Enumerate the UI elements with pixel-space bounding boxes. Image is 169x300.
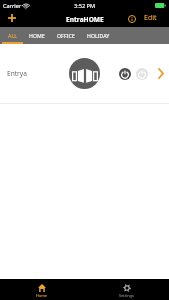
staticText: EntraHOME xyxy=(66,15,104,24)
staticText: OFFICE xyxy=(57,32,75,39)
staticText: ALL xyxy=(8,32,17,39)
staticText: Settings xyxy=(119,293,134,298)
staticText: Edit xyxy=(144,13,157,23)
button[interactable]: Settings xyxy=(84,279,169,300)
button[interactable]: Details xyxy=(155,68,166,79)
staticText: Entrya xyxy=(7,69,27,78)
button[interactable]: Info xyxy=(125,12,138,25)
button[interactable]: Gate xyxy=(69,58,100,89)
button[interactable]: HOLIDAY xyxy=(81,27,116,44)
staticText: HOLIDAY xyxy=(87,32,110,39)
button[interactable]: ALL xyxy=(2,27,23,44)
button[interactable]: Power xyxy=(118,67,131,80)
button[interactable]: Alarm xyxy=(135,67,148,80)
button[interactable]: Home xyxy=(0,279,84,300)
staticText: 3:52 PM xyxy=(74,2,96,10)
staticText: Home xyxy=(36,293,48,298)
button[interactable]: Edit xyxy=(143,11,158,25)
staticText: HOME xyxy=(29,32,45,39)
button[interactable]: Add device xyxy=(4,10,19,25)
button[interactable]: HOME xyxy=(23,27,51,44)
staticText: Carrier xyxy=(3,2,22,10)
button[interactable]: OFFICE xyxy=(51,27,81,44)
button[interactable]: Entrya xyxy=(0,44,169,103)
